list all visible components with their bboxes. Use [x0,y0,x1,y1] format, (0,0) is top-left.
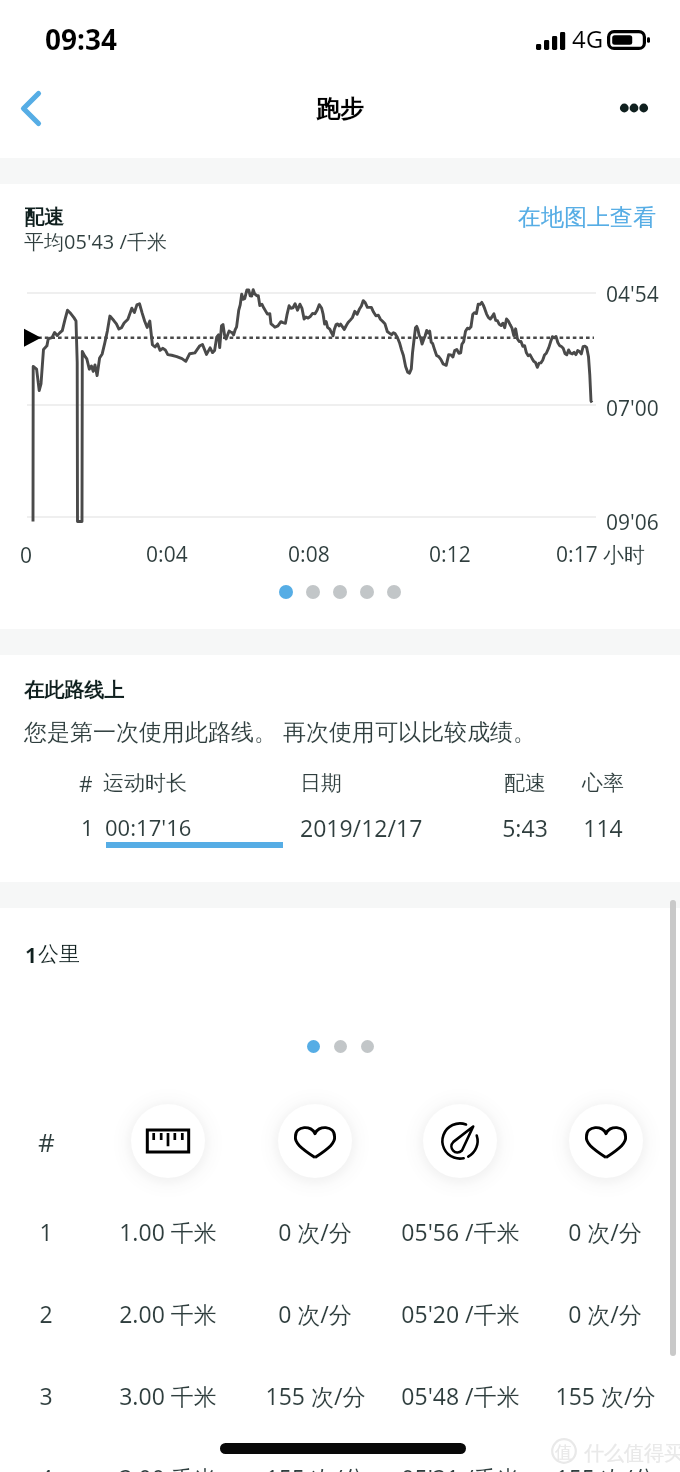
button[interactable]: 3 [0,1369,680,1421]
staticText: 04'54 [606,280,659,309]
button[interactable]: 4 [0,1451,680,1472]
staticText: 跑步 [316,94,364,124]
staticText: 05'31 /千米 [401,1462,520,1472]
button[interactable]: Page 5 [387,585,401,599]
staticText: 09:34 [45,20,117,58]
staticText: 1 [39,1216,53,1247]
button[interactable]: Distance [112,1085,224,1197]
staticText: 心率 [568,770,638,796]
staticText: 00:17'16 [105,812,192,842]
staticText: 运动时长 [103,770,187,796]
staticText: 1 [81,812,94,842]
staticText: 在此路线上 [24,678,124,703]
button[interactable]: Heart rate [550,1085,662,1197]
staticText: 0 [20,541,33,570]
staticText: 配速 [24,205,64,230]
staticText: 日期 [300,770,342,796]
button[interactable]: Heart rate [259,1085,371,1197]
staticText: 3.00 千米 [119,1462,217,1472]
button[interactable]: 1 [0,800,680,862]
staticText: 05'48 /千米 [401,1380,520,1411]
staticText: # [38,1124,55,1159]
staticText: 155 次/分 [555,1462,656,1472]
staticText: 114 [568,812,638,843]
staticText: 0 次/分 [278,1298,352,1329]
staticText: 2.00 千米 [119,1298,217,1329]
staticText: 0:17 小时 [556,540,646,569]
staticText: 平均05'43 /千米 [24,228,167,255]
button[interactable]: Page 2 [334,1040,347,1053]
staticText: 3.00 千米 [119,1380,217,1411]
staticText: 5:43 [490,812,560,843]
staticText: 09'06 [606,508,659,537]
staticText: 05'20 /千米 [401,1298,520,1329]
staticText: 4 [39,1462,53,1472]
staticText: 3 [39,1380,53,1411]
staticText: 什么值得买 [584,1441,680,1466]
staticText: 05'56 /千米 [401,1216,520,1247]
staticText: 4G [572,22,604,55]
button[interactable]: More options [594,69,674,147]
staticText: 1.00 千米 [119,1216,217,1247]
staticText: 07'00 [606,394,659,423]
button[interactable]: Page 4 [360,585,374,599]
staticText: 公里 [38,941,80,967]
staticText: 0:04 [146,540,188,569]
button[interactable]: Page 1 [307,1040,320,1053]
staticText: 0 次/分 [568,1216,642,1247]
staticText: 2019/12/17 [300,812,423,843]
staticText: 值 [555,1442,572,1463]
staticText: 配速 [490,770,560,796]
staticText: 1 [25,941,38,970]
button[interactable]: 在地图上查看 [514,199,660,236]
staticText: 155 次/分 [265,1380,366,1411]
staticText: 0:08 [288,540,330,569]
button[interactable]: Page 3 [361,1040,374,1053]
staticText: 155 次/分 [265,1462,366,1472]
button[interactable]: Page 2 [306,585,320,599]
button[interactable]: 2 [0,1287,680,1339]
staticText: 2 [39,1298,53,1329]
staticText: 0 次/分 [568,1298,642,1329]
staticText: # [79,770,93,799]
staticText: 0 次/分 [278,1216,352,1247]
staticText: 155 次/分 [555,1380,656,1411]
button[interactable]: Page 3 [333,585,347,599]
button[interactable]: Back [0,69,68,147]
staticText: 您是第一次使用此路线。 再次使用可以比较成绩。 [24,715,536,746]
button[interactable]: 1 [0,1205,680,1257]
button[interactable]: Page 1 [279,585,293,599]
staticText: 0:12 [429,540,471,569]
staticText: 在地图上查看 [518,203,656,232]
button[interactable]: Pace [404,1085,516,1197]
